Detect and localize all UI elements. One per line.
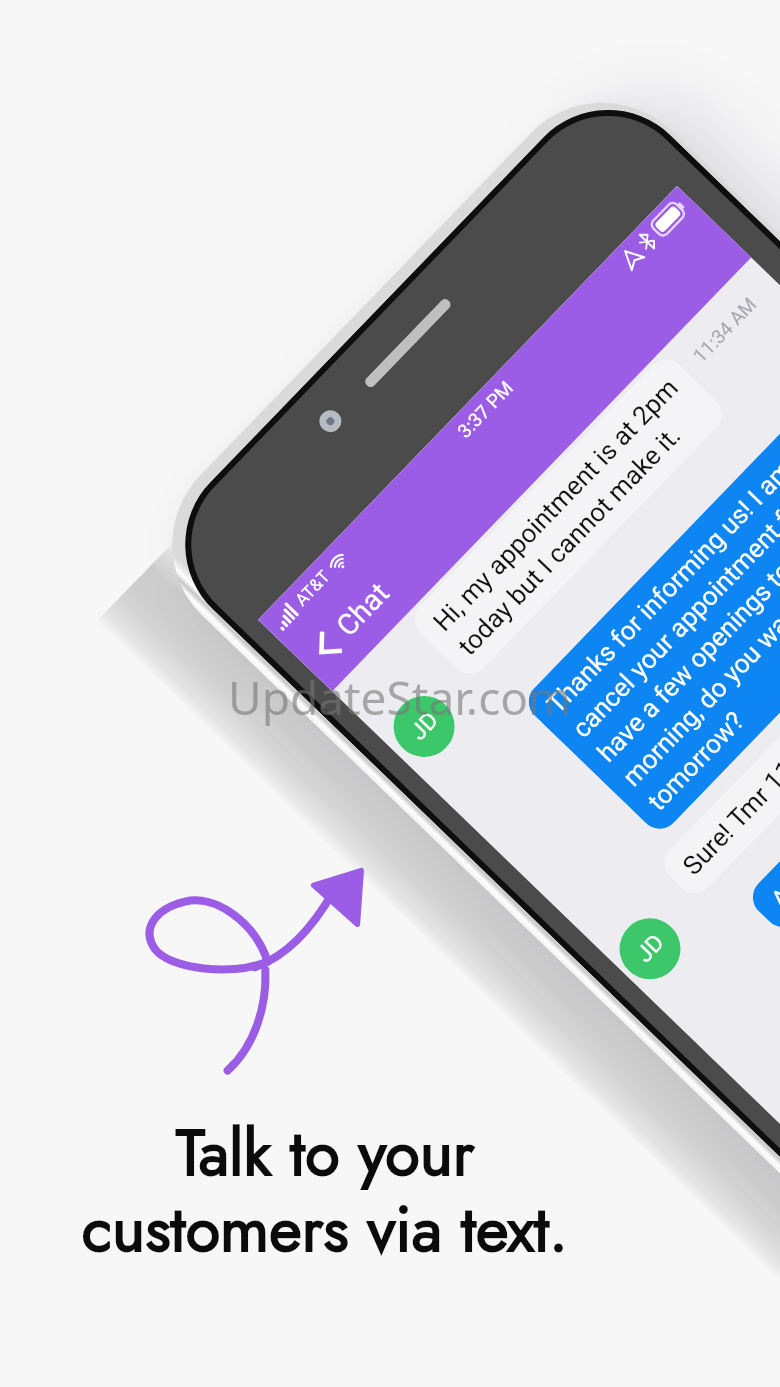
staticText: JD <box>405 707 444 746</box>
button[interactable]: Hi, my appointment is at 2pm today but I… <box>407 352 730 682</box>
staticText: UpdateStar.com <box>228 666 572 729</box>
staticText: JD <box>631 929 670 968</box>
button[interactable]: Awesome! See you then. <box>745 670 780 935</box>
staticText: 11:34 AM <box>688 292 761 367</box>
staticText: Talk to your customers via text. <box>25 1108 625 1275</box>
button[interactable]: JD <box>607 906 693 992</box>
staticText: 3:37 PM <box>453 376 517 442</box>
button[interactable]: Sure! Tmr 11am works for me. <box>656 588 780 901</box>
staticText: Sure! Tmr 11am works for me. <box>677 609 780 881</box>
staticText: Chat <box>330 575 396 643</box>
button[interactable]: Back <box>295 616 358 678</box>
button[interactable]: JD <box>381 683 467 770</box>
staticText: Thanks for informing us! I am able to ca… <box>541 392 780 816</box>
button[interactable]: Thanks for informing us! I am able to ca… <box>521 372 780 837</box>
staticText: AT&T <box>291 566 334 610</box>
staticText: Awesome! See you then. <box>765 690 780 915</box>
staticText: Hi, my appointment is at 2pm today but I… <box>427 372 709 661</box>
